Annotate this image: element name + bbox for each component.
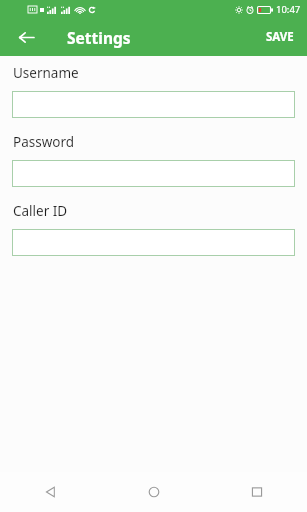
- button[interactable]: Recent apps: [237, 472, 277, 512]
- staticText: 10:47: [276, 3, 301, 16]
- button[interactable]: [12, 91, 295, 118]
- button[interactable]: SAVE: [257, 23, 303, 51]
- staticText: Settings: [67, 27, 131, 48]
- staticText: Username: [13, 64, 79, 82]
- button[interactable]: [12, 229, 295, 256]
- button[interactable]: Back: [30, 472, 70, 512]
- staticText: SAVE: [266, 29, 294, 45]
- button[interactable]: Home: [134, 472, 174, 512]
- staticText: Caller ID: [13, 202, 68, 220]
- button[interactable]: [12, 160, 295, 187]
- button[interactable]: Back: [12, 23, 40, 51]
- staticText: Password: [13, 133, 75, 151]
